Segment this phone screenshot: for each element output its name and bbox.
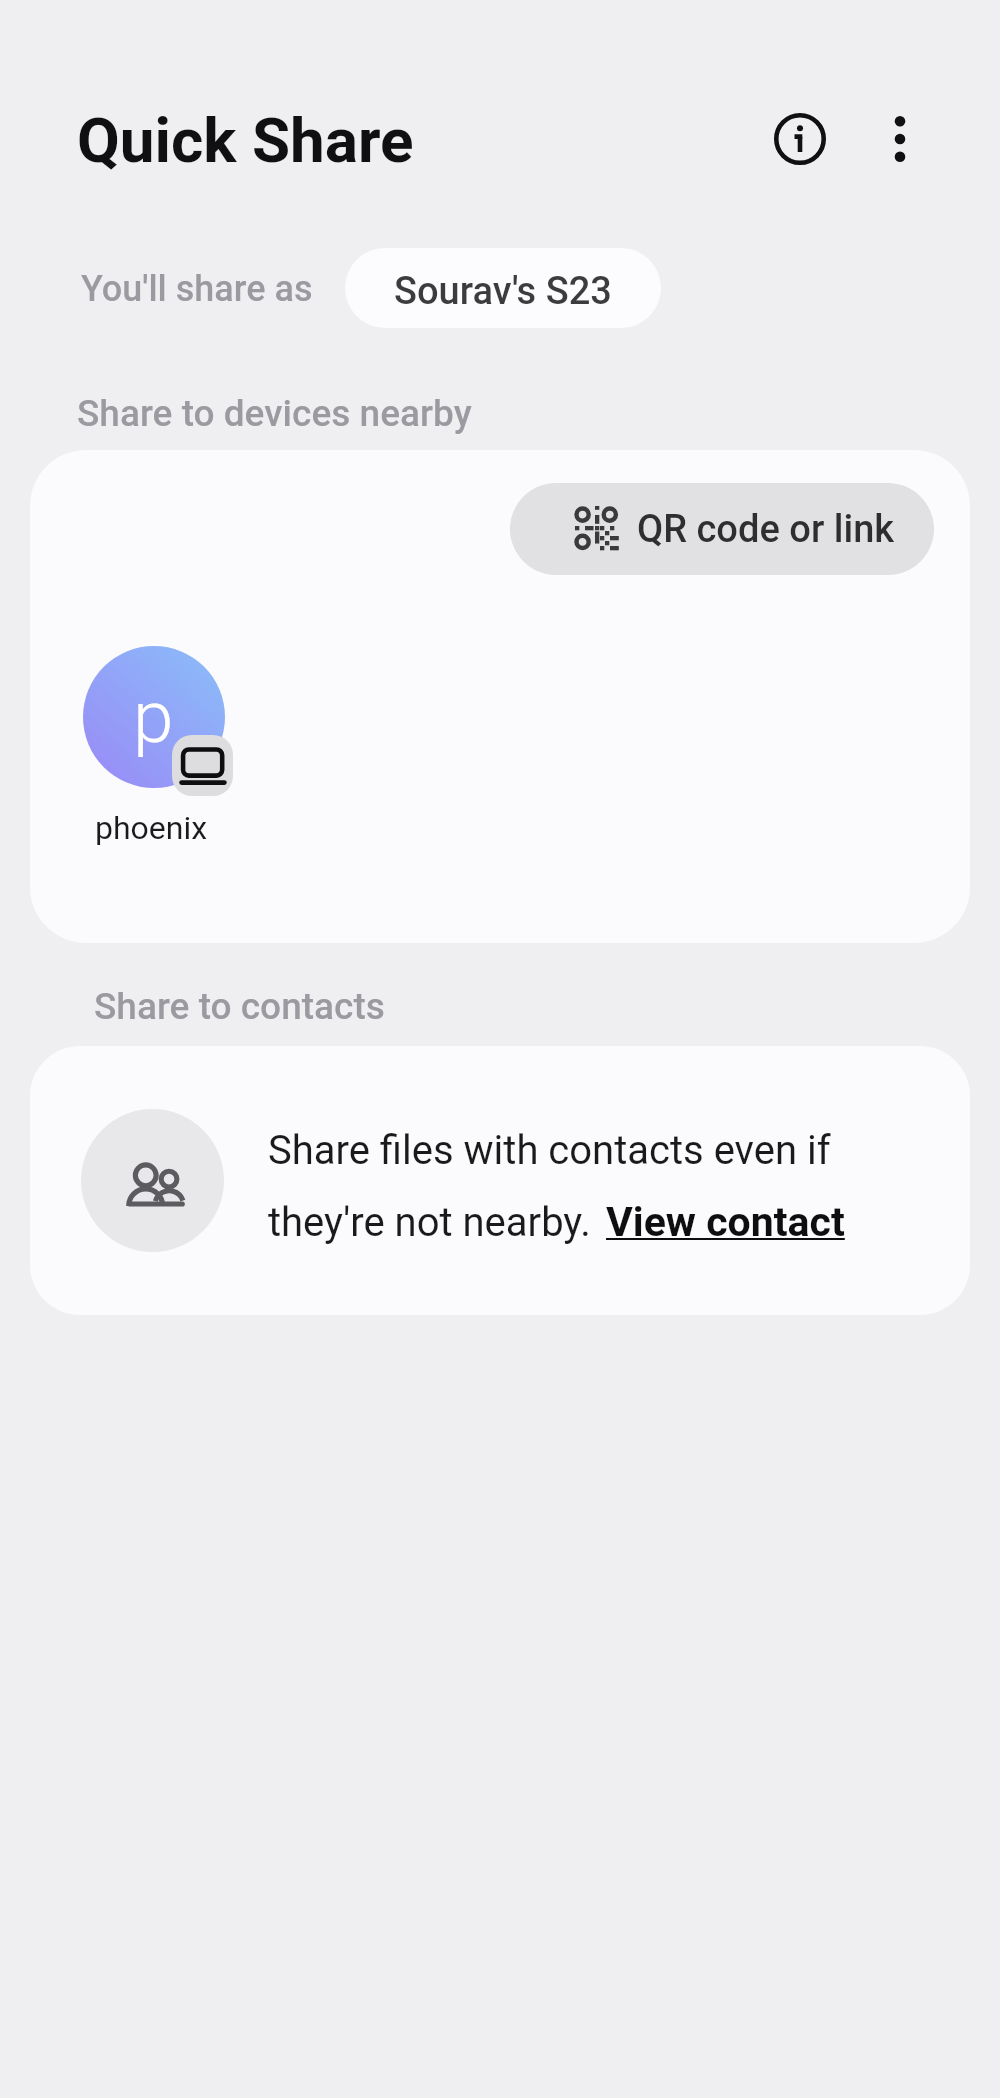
staticText: Share to devices nearby (77, 392, 472, 435)
staticText: Share to contacts (94, 985, 385, 1028)
staticText: You'll share as (81, 268, 313, 310)
staticText: QR code or link (637, 507, 895, 552)
button[interactable]: p (83, 646, 283, 847)
staticText: Quick Share (77, 104, 414, 177)
staticText: p (133, 674, 174, 760)
button[interactable]: Information (758, 97, 842, 181)
button[interactable]: QR code or link (510, 483, 934, 575)
staticText: Sourav's S23 (394, 269, 612, 314)
staticText: Share files with contacts even if (268, 1127, 831, 1174)
staticText: phoenix (95, 809, 208, 847)
button[interactable]: Share files with contacts even if (30, 1046, 970, 1315)
staticText: they're not nearby. (268, 1199, 601, 1246)
button[interactable]: Sourav's S23 (345, 248, 661, 328)
button[interactable]: More options (858, 97, 942, 181)
button[interactable]: View contact (606, 1198, 845, 1246)
